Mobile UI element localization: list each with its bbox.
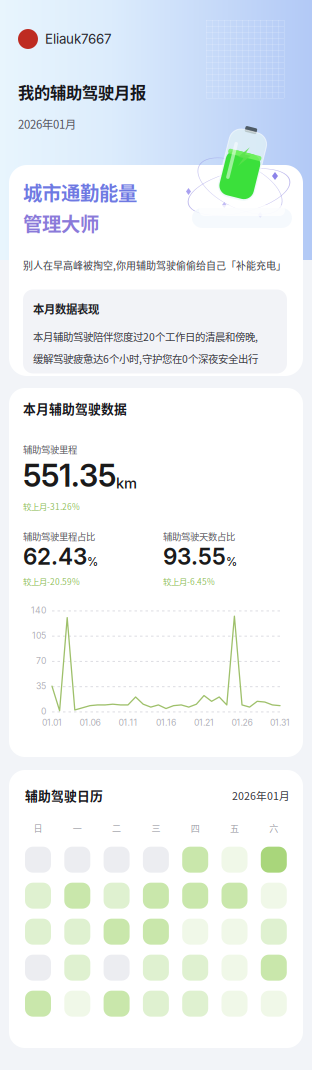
staticText: 本月辅助驾驶数据 — [23, 399, 127, 417]
staticText: 辅助驾驶里程 — [23, 442, 77, 456]
staticText: 01.26 — [231, 717, 252, 728]
staticText: 01.16 — [156, 717, 176, 728]
staticText: 2026年01月 — [232, 787, 290, 803]
staticText: 35 — [36, 681, 46, 691]
staticText: 93.55 — [163, 543, 226, 570]
staticText: 2026年01月 — [18, 116, 76, 132]
staticText: 日 — [33, 821, 42, 835]
staticText: 别人在早高峰被掏空,你用辅助驾驶偷偷给自己「补能充电」 — [23, 258, 286, 272]
staticText: 六 — [269, 821, 278, 835]
staticText: 01.01 — [42, 717, 62, 728]
staticText: 较上月-20.59% — [23, 575, 80, 587]
staticText: % — [87, 555, 98, 569]
staticText: 缓解驾驶疲惫达6个小时,守护您在0个深夜安全出行 — [33, 351, 258, 366]
staticText: 辅助驾驶日历 — [25, 786, 103, 804]
staticText: 五 — [230, 821, 239, 835]
staticText: km — [116, 474, 137, 492]
staticText: 01.21 — [194, 717, 214, 728]
staticText: 城市通勤能量 — [23, 178, 137, 206]
staticText: 01.31 — [270, 717, 290, 728]
staticText: 0 — [41, 706, 46, 717]
staticText: 我的辅助驾驶月报 — [18, 80, 146, 104]
staticText: 本月辅助驾驶陪伴您度过20个工作日的清晨和傍晚, — [33, 329, 258, 344]
staticText: 70 — [36, 656, 46, 666]
staticText: 辅助驾驶里程占比 — [23, 529, 95, 543]
staticText: 二 — [112, 821, 121, 835]
staticText: 一 — [73, 821, 82, 835]
staticText: 较上月-6.45% — [163, 575, 215, 587]
staticText: 551.35 — [23, 457, 116, 494]
staticText: % — [226, 555, 237, 569]
staticText: 140 — [31, 605, 46, 616]
button[interactable]: Eliauk7667 — [18, 29, 112, 49]
staticText: 62.43 — [23, 543, 87, 570]
staticText: 管理大师 — [23, 209, 99, 237]
staticText: 01.11 — [118, 717, 137, 728]
staticText: 本月数据表现 — [33, 300, 99, 317]
staticText: 三 — [151, 821, 160, 835]
staticText: Eliauk7667 — [45, 31, 112, 47]
staticText: 01.06 — [79, 717, 100, 728]
staticText: 较上月-31.26% — [23, 500, 80, 512]
staticText: 105 — [32, 630, 46, 641]
staticText: 辅助驾驶天数占比 — [163, 529, 235, 543]
staticText: 四 — [191, 821, 200, 835]
